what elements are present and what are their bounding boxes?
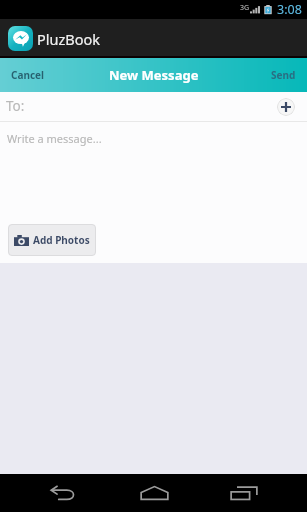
button[interactable]: Cancel <box>0 68 56 82</box>
staticText: Add Photos <box>33 233 90 247</box>
staticText: 3:08 <box>277 1 302 18</box>
button[interactable]: Add Photos <box>8 224 96 256</box>
staticText: Cancel <box>11 68 45 82</box>
button[interactable]: PluzBook <box>8 26 33 51</box>
staticText: New Message <box>109 66 199 84</box>
staticText: To: <box>6 97 25 115</box>
button[interactable]: Add recipient <box>277 98 295 116</box>
button[interactable]: Send <box>260 68 307 82</box>
button[interactable]: Back <box>27 474 97 512</box>
staticText: PluzBook <box>37 29 101 49</box>
button[interactable]: Recent apps <box>209 474 279 512</box>
staticText: Send <box>271 68 296 82</box>
button[interactable]: Home <box>119 474 189 512</box>
staticText: 3G <box>240 3 250 13</box>
staticText: Write a message... <box>7 131 102 146</box>
